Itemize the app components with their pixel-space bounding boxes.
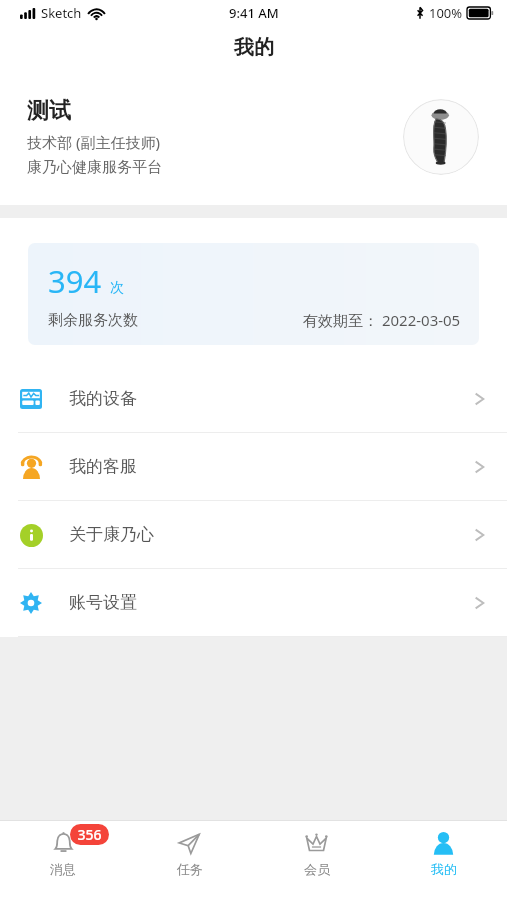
staticText: 394 <box>48 260 102 302</box>
staticText: 100% <box>429 4 463 22</box>
button[interactable]: 会员 <box>253 821 380 888</box>
staticText: 账号设置 <box>69 592 137 613</box>
button[interactable]: 356 <box>0 821 126 888</box>
staticText: 有效期至： 2022-03-05 <box>303 310 461 330</box>
button[interactable]: 我的 <box>380 821 507 888</box>
button[interactable]: Avatar <box>403 99 479 175</box>
staticText: 我的设备 <box>69 388 137 409</box>
staticText: 康乃心健康服务平台 <box>27 158 162 177</box>
staticText: 测试 <box>27 97 71 125</box>
staticText: 消息 <box>50 861 76 877</box>
staticText: 技术部 (副主任技师) <box>27 132 160 152</box>
staticText: 9:41 AM <box>229 4 279 22</box>
staticText: 我的客服 <box>69 456 137 477</box>
staticText: 我的 <box>431 861 457 877</box>
staticText: 356 <box>77 825 102 844</box>
staticText: 剩余服务次数 <box>48 311 138 330</box>
button[interactable]: 关于康乃心 <box>0 501 507 568</box>
staticText: 关于康乃心 <box>69 524 154 545</box>
staticText: Sketch <box>41 4 82 22</box>
button[interactable]: 我的客服 <box>0 433 507 500</box>
staticText: 会员 <box>304 861 330 877</box>
button[interactable]: 账号设置 <box>0 569 507 636</box>
staticText: 次 <box>110 279 124 297</box>
button[interactable]: 任务 <box>126 821 253 888</box>
staticText: 我的 <box>234 35 274 60</box>
button[interactable]: 我的设备 <box>0 365 507 432</box>
staticText: 任务 <box>177 861 203 877</box>
button[interactable]: 394 <box>28 243 479 345</box>
